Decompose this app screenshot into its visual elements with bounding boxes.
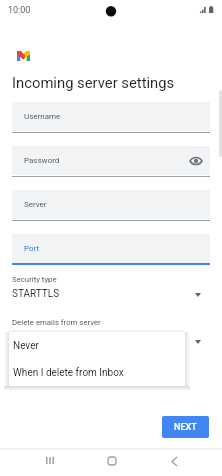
staticText: Incoming server settings (12, 74, 175, 91)
button[interactable]: Security type (12, 275, 210, 301)
button[interactable]: NEXT (162, 416, 209, 438)
staticText: Username (24, 112, 61, 121)
staticText: 10:00 (8, 5, 31, 16)
button[interactable]: Server (12, 190, 210, 221)
staticText: Server (24, 200, 47, 209)
button[interactable]: Home (94, 448, 130, 476)
button[interactable]: Never (9, 332, 185, 359)
button[interactable]: Username (12, 102, 210, 133)
button[interactable]: Port (12, 234, 210, 265)
button[interactable]: Delete emails from server (12, 318, 210, 344)
staticText: Delete emails from server (12, 318, 101, 327)
button[interactable]: Show password (187, 152, 205, 170)
button[interactable]: Recents (32, 448, 68, 476)
staticText: Never (13, 340, 39, 352)
button[interactable]: When I delete from Inbox (9, 359, 185, 386)
button[interactable]: Back (156, 448, 192, 476)
staticText: Password (24, 156, 60, 165)
staticText: When I delete from Inbox (13, 367, 124, 379)
button[interactable]: Password (12, 146, 210, 177)
staticText: Port (24, 244, 40, 253)
staticText: STARTTLS (12, 288, 60, 300)
staticText: Security type (12, 275, 57, 284)
staticText: NEXT (174, 422, 197, 433)
staticText: Never (12, 331, 38, 343)
